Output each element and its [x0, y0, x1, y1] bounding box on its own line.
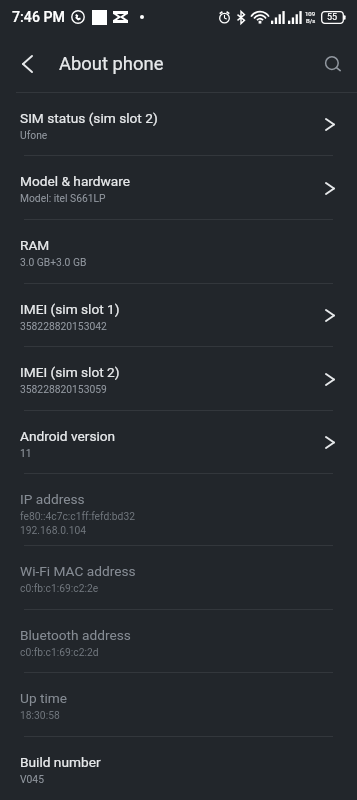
button[interactable]: Build number [0, 737, 357, 800]
staticText: c0:fb:c1:69:c2:2d [20, 646, 99, 658]
staticText: 18:30:58 [20, 709, 60, 721]
button[interactable]: Up time [0, 673, 357, 737]
button[interactable]: Model & hardware [0, 156, 357, 220]
staticText: Ufone [20, 129, 48, 141]
staticText: SIM status (sim slot 2) [20, 110, 158, 126]
button[interactable]: RAM [0, 220, 357, 284]
button[interactable]: IP address [0, 474, 357, 546]
button[interactable]: IMEI (sim slot 1) [0, 284, 357, 347]
staticText: 358228820153042 [20, 320, 107, 332]
staticText: About phone [59, 53, 164, 75]
staticText: Model & hardware [20, 173, 131, 189]
staticText: 11 [20, 447, 32, 459]
staticText: IMEI (sim slot 1) [20, 301, 120, 317]
staticText: RAM [20, 237, 50, 253]
staticText: Bluetooth address [20, 627, 131, 643]
staticText: fe80::4c7c:c1ff:fefd:bd32 192.168.0.104 [20, 510, 136, 537]
staticText: Build number [20, 754, 101, 770]
staticText: IMEI (sim slot 2) [20, 364, 120, 380]
staticText: V045 [20, 773, 44, 785]
staticText: IP address [20, 491, 85, 507]
button[interactable]: IMEI (sim slot 2) [0, 347, 357, 411]
staticText: B/s [306, 17, 316, 24]
staticText: Up time [20, 690, 68, 706]
staticText: 3.0 GB+3.0 GB [20, 256, 87, 268]
button[interactable]: Search [309, 34, 357, 93]
staticText: Model: itel S661LP [20, 192, 106, 204]
staticText: Wi-Fi MAC address [20, 563, 136, 579]
button[interactable]: Wi-Fi MAC address [0, 546, 357, 610]
staticText: 358228820153059 [20, 383, 107, 395]
staticText: Android version [20, 428, 116, 444]
staticText: 109 [305, 10, 316, 17]
staticText: 55 [327, 12, 338, 23]
staticText: c0:fb:c1:69:c2:2e [20, 582, 99, 594]
button[interactable]: Bluetooth address [0, 610, 357, 673]
button[interactable]: SIM status (sim slot 2) [0, 93, 357, 156]
button[interactable]: Android version [0, 411, 357, 474]
staticText: 7:46 PM [12, 9, 65, 26]
button[interactable]: Back [0, 34, 56, 93]
